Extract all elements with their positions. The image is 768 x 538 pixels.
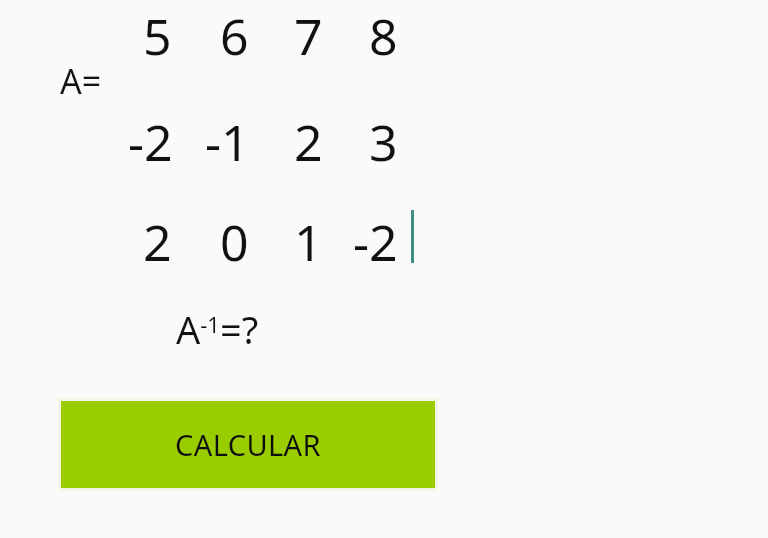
staticText: -2 xyxy=(128,108,173,176)
staticText: A= xyxy=(60,58,102,104)
staticText: -1 xyxy=(205,108,250,176)
staticText: 5 xyxy=(143,2,172,70)
staticText: 8 xyxy=(369,2,398,70)
staticText: 0 xyxy=(220,208,249,276)
staticText: A-1=? xyxy=(176,303,259,355)
staticText: 1 xyxy=(294,208,323,276)
staticText: 2 xyxy=(143,208,172,276)
staticText: 3 xyxy=(369,108,398,176)
staticText: -2 xyxy=(353,208,398,276)
staticText: 2 xyxy=(294,108,323,176)
staticText: CALCULAR xyxy=(175,425,321,464)
button[interactable]: CALCULAR xyxy=(61,401,435,488)
staticText: 7 xyxy=(294,2,323,70)
staticText: 6 xyxy=(220,2,249,70)
